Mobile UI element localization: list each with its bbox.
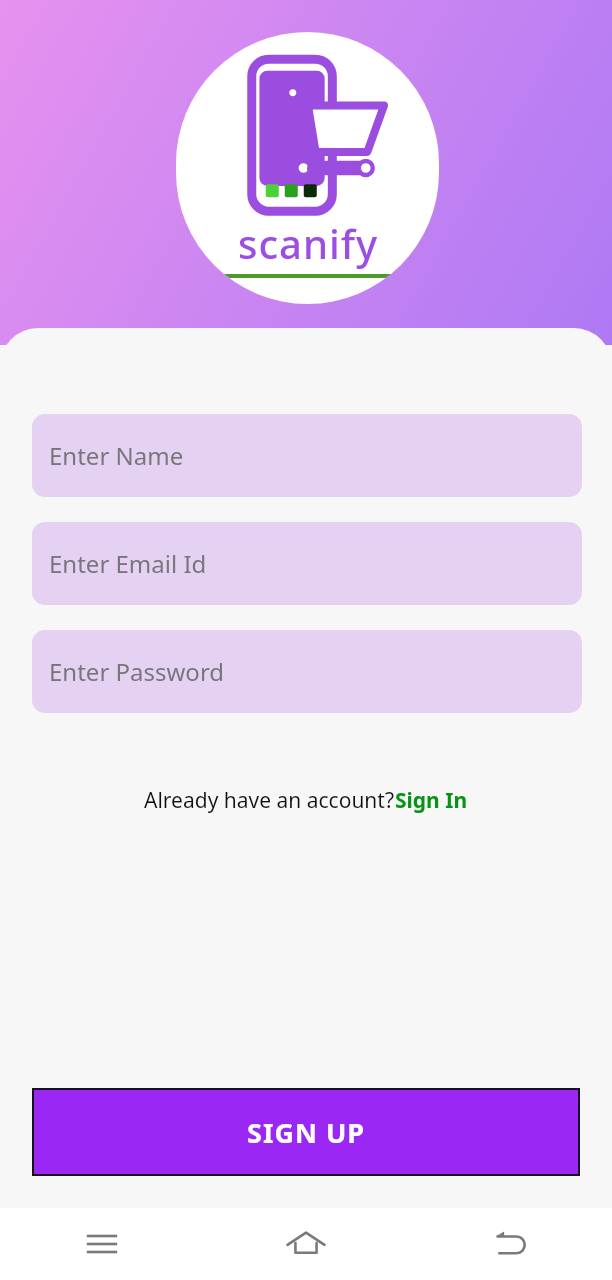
button[interactable]: SIGN UP — [32, 1088, 580, 1176]
staticText: Enter Name — [49, 439, 184, 472]
staticText: Sign In — [395, 786, 468, 815]
button[interactable]: Already have an account? — [142, 782, 470, 819]
button[interactable]: Back — [408, 1208, 612, 1280]
staticText: Enter Password — [49, 655, 225, 688]
staticText: Enter Email Id — [49, 547, 207, 580]
button[interactable]: Enter Password — [32, 630, 582, 713]
staticText: SIGN UP — [247, 1114, 366, 1151]
button[interactable]: Home — [204, 1208, 408, 1280]
button[interactable]: Menu — [0, 1208, 204, 1280]
button[interactable]: Enter Name — [32, 414, 582, 497]
button[interactable]: Enter Email Id — [32, 522, 582, 605]
staticText: Already have an account? — [144, 786, 395, 815]
staticText: scanify — [238, 216, 379, 270]
